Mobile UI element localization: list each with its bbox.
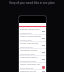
staticText: Travel checklist for Japan (20, 63, 42, 66)
staticText: Weekend recipe collection (20, 49, 42, 52)
button[interactable]: Add link (42, 66, 45, 69)
button[interactable]: Design inspiration board (20, 28, 45, 34)
staticText: How to build better habits (20, 35, 42, 38)
staticText: medium.com (20, 39, 32, 41)
staticText: Design inspiration board (20, 28, 42, 31)
button[interactable]: How to build better habits (20, 35, 45, 41)
button[interactable]: Kotlin coroutines guide (20, 42, 45, 48)
button[interactable]: Compose layout basics (20, 56, 45, 62)
staticText: dribbble.com (20, 32, 32, 34)
button[interactable]: Reading list for autumn (20, 70, 45, 72)
staticText: developer.android (20, 60, 36, 62)
staticText: Kotlin coroutines guide (20, 42, 42, 45)
staticText: seriouseats.com (20, 53, 35, 55)
staticText: kotlinlang.org (20, 46, 33, 48)
staticText: Compose layout basics (20, 56, 42, 59)
button[interactable]: Travel checklist for Japan (20, 63, 45, 69)
button[interactable]: Weekend recipe collection (20, 49, 45, 55)
staticText: Reading list for autumn (20, 70, 42, 72)
staticText: Keep all your saved links in one place (0, 1, 64, 5)
staticText: nomadlist.com (20, 67, 34, 69)
